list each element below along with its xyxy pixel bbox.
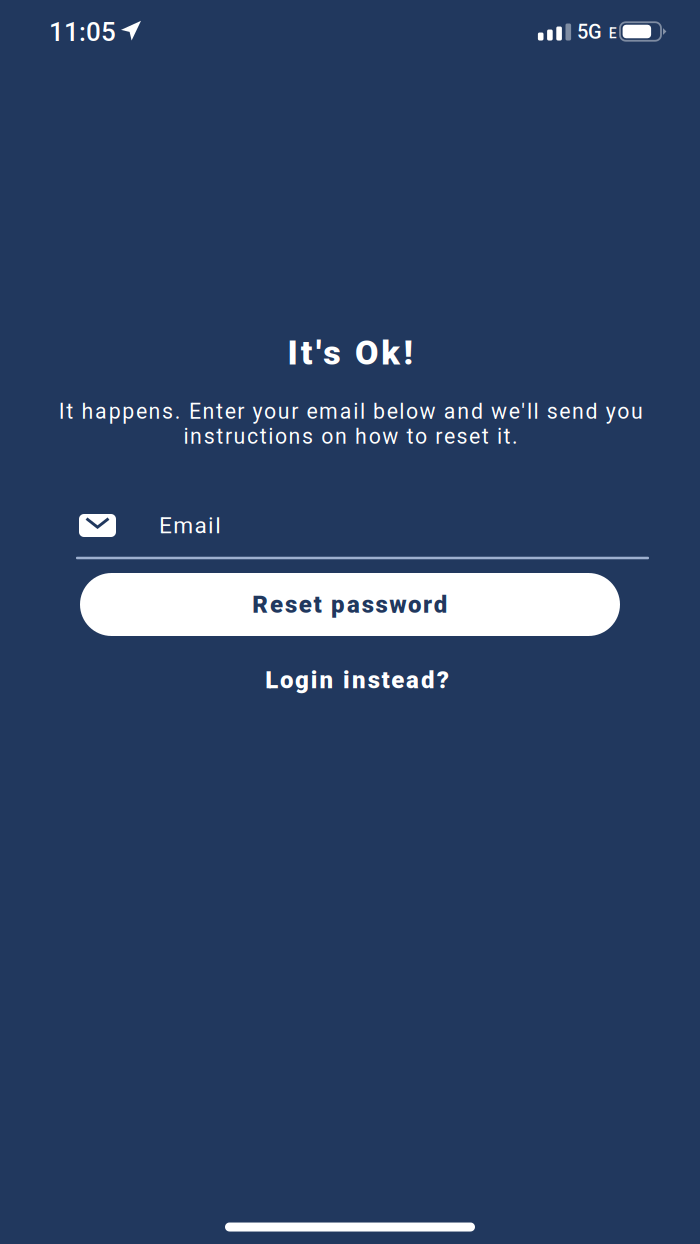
staticText: Reset password [252, 590, 448, 618]
staticText: Login instead? [265, 666, 449, 694]
staticText: 5G [577, 20, 602, 44]
staticText: Email [159, 512, 221, 539]
staticText: It happens. Enter your email below and w… [58, 399, 642, 449]
staticText: E [609, 25, 617, 42]
button[interactable]: Reset password [80, 573, 620, 636]
staticText: 11:05 [49, 17, 116, 47]
staticText: It's Ok! [287, 333, 413, 373]
button[interactable]: Login instead? [207, 659, 507, 701]
